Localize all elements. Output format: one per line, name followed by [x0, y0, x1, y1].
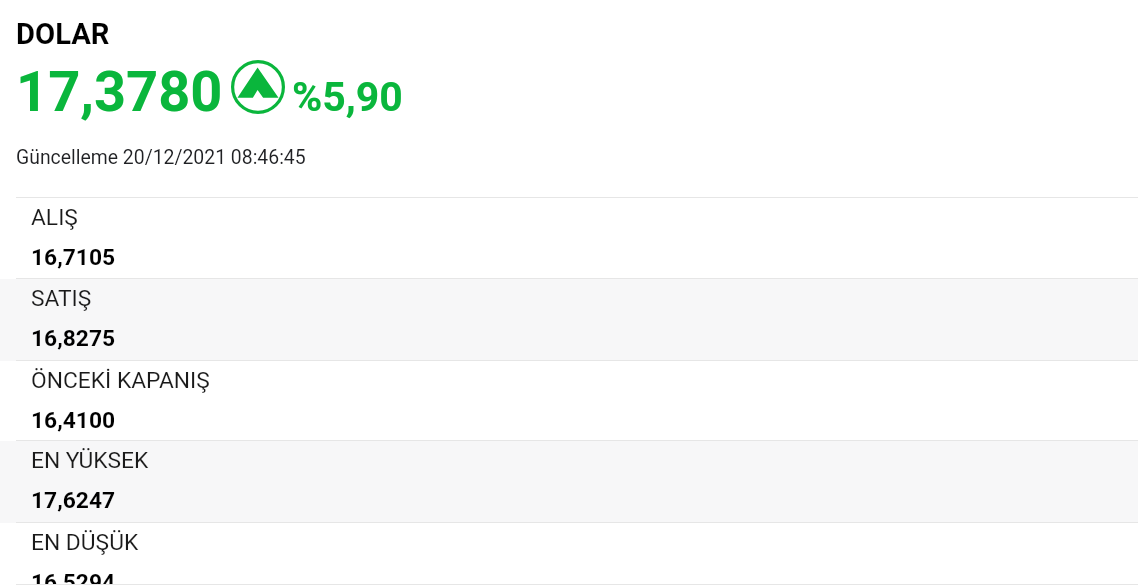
staticText: 16,4100 [31, 407, 116, 434]
staticText: EN DÜŞÜK [31, 529, 139, 556]
staticText: DOLAR [16, 17, 110, 51]
staticText: 16,7105 [31, 244, 116, 271]
staticText: 16,5294 [31, 569, 116, 585]
button[interactable]: ÖNCEKİ KAPANIŞ [0, 361, 1138, 441]
button[interactable]: EN YÜKSEK [0, 441, 1138, 523]
staticText: SATIŞ [31, 285, 92, 312]
staticText: EN YÜKSEK [31, 447, 149, 474]
staticText: Güncelleme 20/12/2021 08:46:45 [16, 146, 306, 169]
staticText: 17,6247 [31, 487, 116, 514]
staticText: ÖNCEKİ KAPANIŞ [31, 367, 210, 394]
button[interactable]: ALIŞ [0, 198, 1138, 279]
staticText: 16,8275 [31, 325, 116, 352]
other: Yükseliş [231, 60, 285, 114]
staticText: ALIŞ [31, 204, 78, 231]
button[interactable]: EN DÜŞÜK [0, 523, 1138, 585]
staticText: 17,3780 [16, 59, 223, 125]
staticText: %5,90 [292, 73, 403, 121]
button[interactable]: SATIŞ [0, 279, 1138, 361]
